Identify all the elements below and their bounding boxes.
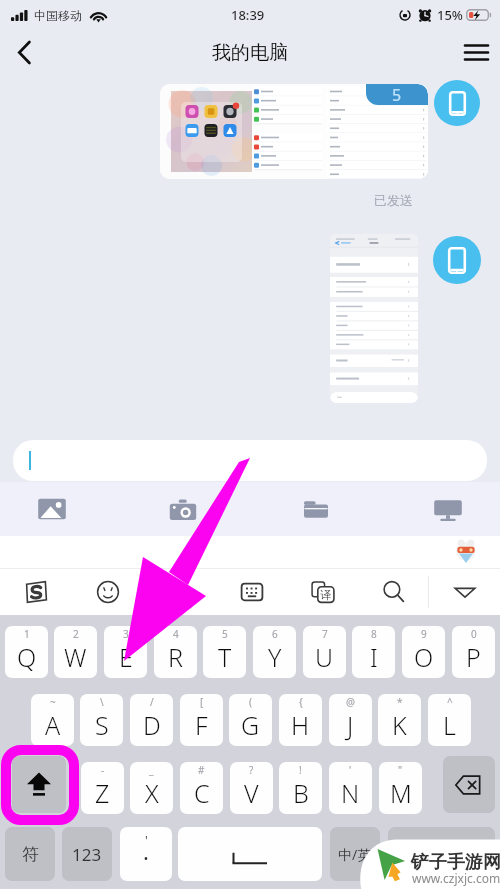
button[interactable]: Sticker — [454, 538, 478, 564]
button[interactable]: 0 — [452, 626, 495, 678]
button[interactable]: - — [81, 762, 124, 814]
staticText: 0 — [471, 627, 477, 641]
staticText: · — [143, 842, 149, 872]
staticText: ' — [145, 832, 148, 848]
staticText: V — [244, 776, 259, 810]
button[interactable]: Device avatar 2 — [433, 236, 481, 284]
button[interactable]: 9 — [402, 626, 445, 678]
button[interactable]: Device avatar — [434, 80, 480, 126]
staticText: 6 — [272, 627, 278, 641]
button[interactable]: _ — [130, 762, 173, 814]
button[interactable]: Menu — [452, 30, 500, 75]
button[interactable]: Computer — [414, 483, 482, 535]
button[interactable]: * — [378, 694, 421, 746]
button[interactable]: Search — [358, 569, 429, 615]
button[interactable]: 1 — [5, 626, 48, 678]
staticText: ! — [299, 763, 302, 777]
staticText: www.czjxjc.com — [412, 870, 500, 886]
staticText: 符 — [22, 844, 39, 865]
staticText: 我的电脑 — [212, 41, 288, 65]
staticText: ? — [249, 763, 254, 777]
button[interactable]: 7 — [303, 626, 346, 678]
staticText: 8 — [371, 627, 377, 641]
staticText: Z — [95, 776, 110, 810]
staticText: 7 — [322, 627, 328, 641]
staticText: C — [194, 776, 210, 810]
button[interactable]: Translate — [287, 569, 358, 615]
button[interactable]: 5 — [203, 626, 246, 678]
staticText: P — [466, 640, 481, 674]
button[interactable]: 5 — [160, 84, 428, 179]
staticText: M — [390, 776, 412, 810]
button[interactable]: 123 — [62, 827, 112, 881]
staticText: ^ — [447, 695, 453, 709]
staticText: [ — [200, 695, 204, 709]
button[interactable]: Sogou input — [0, 569, 72, 615]
staticText: { — [299, 695, 303, 709]
staticText: 15% — [437, 6, 463, 24]
staticText: _ — [149, 763, 154, 777]
staticText: * — [397, 695, 403, 709]
button[interactable] — [13, 440, 487, 481]
staticText: 中/英 — [338, 845, 372, 864]
staticText: X — [145, 776, 159, 810]
staticText: G — [241, 708, 260, 742]
button[interactable]: @ — [329, 694, 372, 746]
button[interactable]: 8 — [352, 626, 395, 678]
button[interactable]: 4 — [154, 626, 197, 678]
button[interactable]: / — [130, 694, 173, 746]
staticText: T — [218, 640, 232, 674]
button[interactable]: " — [379, 762, 422, 814]
button[interactable]: Camera — [149, 483, 217, 535]
button[interactable]: [ — [180, 694, 223, 746]
staticText: " — [398, 763, 403, 777]
staticText: E — [119, 640, 133, 674]
staticText: W — [64, 640, 87, 674]
button[interactable]: 6 — [253, 626, 296, 678]
button[interactable]: Keyboard layout — [216, 569, 287, 615]
button[interactable]: 2 — [54, 626, 97, 678]
staticText: - — [101, 763, 105, 777]
staticText: 5 — [222, 627, 228, 641]
button[interactable]: Hide keyboard — [429, 569, 500, 615]
button[interactable]: 符 — [5, 827, 55, 881]
button[interactable]: { — [279, 694, 322, 746]
staticText: D — [143, 708, 161, 742]
button[interactable]: Voice — [144, 569, 216, 615]
button[interactable]: ? — [230, 762, 273, 814]
button[interactable]: 中/英 — [330, 827, 380, 881]
staticText: L — [443, 708, 456, 742]
button[interactable]: ^ — [428, 694, 471, 746]
button[interactable]: Shift — [12, 756, 66, 813]
button[interactable]: ( — [229, 694, 272, 746]
staticText: 123 — [72, 843, 102, 866]
button[interactable]: ' — [329, 762, 372, 814]
button[interactable]: Back — [0, 30, 48, 75]
staticText: ( — [249, 695, 252, 709]
staticText: ' — [349, 763, 352, 777]
button[interactable]: \ — [80, 694, 123, 746]
staticText: B — [293, 776, 309, 810]
staticText: 1 — [24, 627, 30, 641]
button[interactable]: # — [180, 762, 223, 814]
button[interactable]: ! — [279, 762, 322, 814]
button[interactable]: Punctuation — [120, 827, 172, 881]
button[interactable]: Files — [282, 483, 350, 535]
button[interactable]: Photos — [18, 483, 86, 535]
staticText: 2 — [73, 627, 79, 641]
button[interactable] — [330, 234, 418, 403]
button[interactable]: Space — [178, 827, 322, 881]
staticText: R — [168, 640, 183, 674]
button[interactable]: Emoji — [72, 569, 144, 615]
button[interactable]: ~ — [31, 694, 74, 746]
button[interactable]: Backspace — [443, 756, 495, 813]
button[interactable]: 3 — [104, 626, 147, 678]
staticText: 已发送 — [374, 192, 413, 208]
staticText: ~ — [50, 695, 56, 709]
staticText: K — [392, 708, 407, 742]
staticText: I — [370, 640, 378, 674]
staticText: F — [195, 708, 208, 742]
staticText: Q — [17, 640, 37, 674]
staticText: # — [198, 763, 205, 777]
button[interactable]: Enter — [388, 827, 495, 881]
